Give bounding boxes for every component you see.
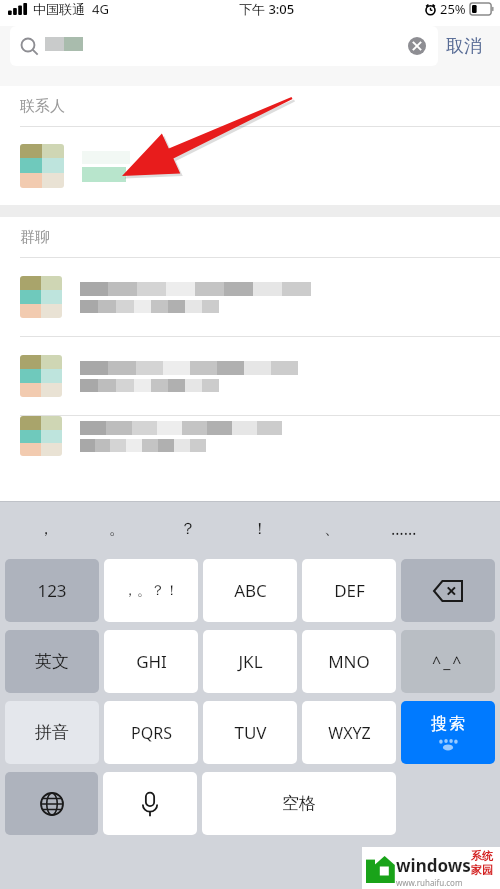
button[interactable]: ！ <box>224 502 296 555</box>
button[interactable]: Clear <box>10 26 438 66</box>
button[interactable]: PQRS <box>104 701 198 764</box>
button[interactable]: 、 <box>296 502 368 555</box>
button[interactable] <box>0 126 500 205</box>
staticText: 下午 3:05 <box>239 0 295 18</box>
button[interactable]: GHI <box>104 630 198 693</box>
button[interactable]: 英文 <box>5 630 99 693</box>
button[interactable] <box>0 415 500 456</box>
button[interactable]: …… <box>368 502 440 555</box>
staticText: ABC <box>234 579 267 602</box>
button[interactable]: MNO <box>302 630 396 693</box>
staticText: 取消 <box>446 35 482 58</box>
button[interactable] <box>0 336 500 415</box>
staticText: 英文 <box>35 651 69 672</box>
staticText: 系统家园 <box>471 849 500 877</box>
button[interactable]: ，。？！ <box>104 559 198 622</box>
button[interactable]: DEF <box>302 559 396 622</box>
button[interactable]: TUV <box>203 701 297 764</box>
staticText: 4G <box>92 0 109 18</box>
staticText: 群聊 <box>20 228 50 247</box>
button[interactable]: 取消 <box>438 29 490 64</box>
button[interactable] <box>0 257 500 336</box>
button[interactable]: JKL <box>203 630 297 693</box>
staticText: ^_^ <box>432 651 464 673</box>
button[interactable]: Delete <box>401 559 495 622</box>
staticText: 搜索 <box>430 714 466 734</box>
button[interactable]: ^_^ <box>401 630 495 693</box>
staticText: 。 <box>109 519 125 539</box>
staticText: GHI <box>136 650 167 673</box>
staticText: 中国联通 <box>33 1 85 17</box>
button[interactable]: 拼音 <box>5 701 99 764</box>
staticText: MNO <box>328 650 370 673</box>
button[interactable]: Switch keyboard <box>5 772 98 835</box>
button[interactable]: 空格 <box>202 772 396 835</box>
button[interactable]: ？ <box>152 502 224 555</box>
staticText: DEF <box>334 579 365 602</box>
staticText: …… <box>391 518 417 540</box>
staticText: 拼音 <box>35 722 69 743</box>
button[interactable]: ， <box>10 502 81 555</box>
staticText: 联系人 <box>20 97 65 116</box>
button[interactable]: Clear <box>406 35 428 57</box>
staticText: ？ <box>180 519 196 539</box>
staticText: 空格 <box>282 793 316 814</box>
staticText: JKL <box>238 650 263 673</box>
button[interactable]: 搜索 <box>401 701 495 764</box>
staticText: ，。？！ <box>123 582 179 600</box>
staticText: ！ <box>252 519 268 539</box>
button[interactable]: Voice input <box>103 772 197 835</box>
button[interactable]: 。 <box>81 502 152 555</box>
staticText: TUV <box>234 721 267 744</box>
staticText: www.ruhaifu.com <box>396 877 463 888</box>
button[interactable]: ABC <box>203 559 297 622</box>
staticText: 123 <box>37 579 67 602</box>
staticText: 、 <box>324 519 340 539</box>
staticText: windows <box>396 854 471 877</box>
staticText: 25% <box>440 0 466 18</box>
button[interactable]: 123 <box>5 559 99 622</box>
staticText: PQRS <box>131 722 172 744</box>
staticText: ， <box>38 519 54 539</box>
staticText: WXYZ <box>328 722 371 744</box>
button[interactable]: WXYZ <box>302 701 396 764</box>
